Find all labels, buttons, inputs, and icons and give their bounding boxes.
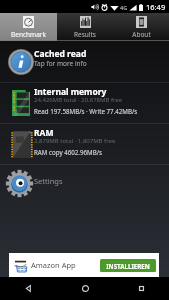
button[interactable]: About [113, 13, 169, 41]
button[interactable]: INSTALLIEREN [100, 259, 156, 272]
staticText: Settings [34, 176, 63, 186]
staticText: Cached read [34, 48, 87, 60]
button[interactable]: Amazon App [9, 253, 159, 277]
button[interactable]: Recent apps [113, 277, 169, 300]
button[interactable]: Cached read [0, 41, 169, 82]
button[interactable]: Back [0, 277, 57, 300]
button[interactable]: Internal memory [0, 83, 169, 123]
staticText: About [132, 30, 151, 39]
staticText: 16:49 [146, 2, 166, 12]
button[interactable]: Results [57, 13, 113, 41]
staticText: Internal memory [34, 86, 107, 98]
staticText: 24,426MB total · 20,678MB free [34, 96, 123, 104]
staticText: Read 197.58MB/s · Write 77.42MB/s [34, 107, 138, 115]
staticText: Amazon App [31, 260, 76, 270]
staticText: Results [74, 30, 96, 39]
staticText: Benchmark [11, 30, 46, 39]
button[interactable]: Benchmark [0, 13, 57, 41]
button[interactable]: Settings [0, 165, 169, 201]
staticText: 2,879MB total · 1,807MB free [34, 137, 116, 145]
button[interactable]: RAM [0, 124, 169, 164]
staticText: RAM [34, 127, 54, 139]
staticText: Tap for more info [34, 59, 87, 68]
staticText: INSTALLIEREN [106, 262, 150, 270]
button[interactable]: Home [57, 277, 113, 300]
staticText: 4G [120, 4, 128, 11]
staticText: RAM copy 4602.96MB/s [34, 148, 102, 156]
